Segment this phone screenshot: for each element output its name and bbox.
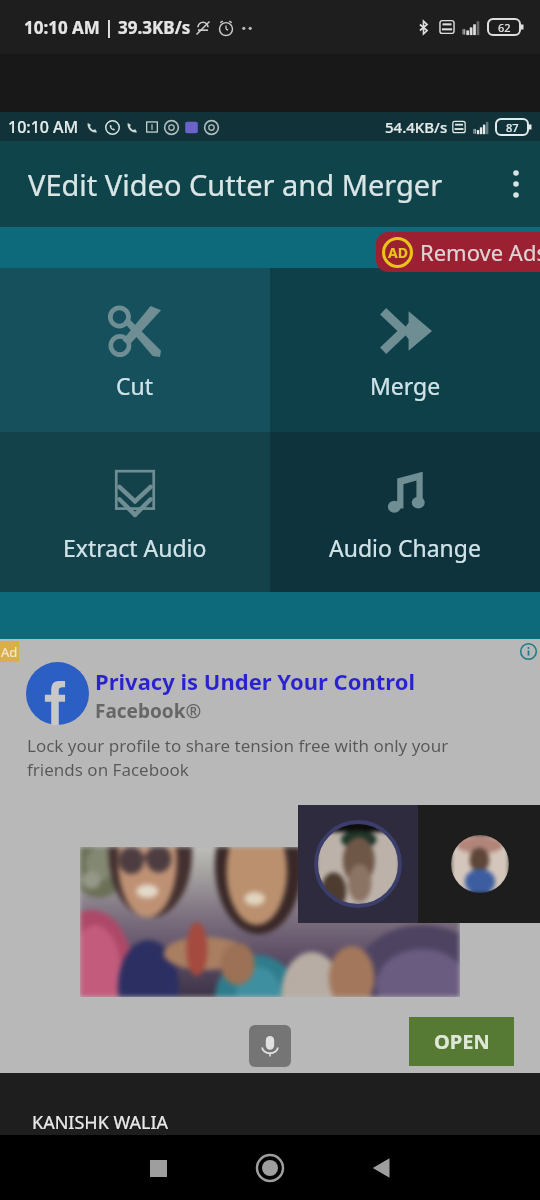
staticText: 10:10 AM | 39.3KB/s xyxy=(24,16,191,39)
button[interactable]: Merge xyxy=(270,268,540,432)
staticText: 54.4KB/s xyxy=(385,117,448,137)
staticText: OPEN xyxy=(434,1028,490,1055)
button[interactable]: More options xyxy=(492,160,540,208)
staticText: Cut xyxy=(116,370,154,401)
staticText: 87 xyxy=(506,120,519,135)
staticText: VEdit Video Cutter and Merger xyxy=(28,165,443,204)
button[interactable]: Ad info xyxy=(518,641,538,661)
staticText: Privacy is Under Your Control xyxy=(95,666,416,696)
staticText: Ad xyxy=(1,643,18,661)
staticText: Merge xyxy=(370,370,441,401)
button[interactable]: Home xyxy=(242,1140,298,1196)
button[interactable]: AD xyxy=(376,232,540,272)
staticText: Facebook® xyxy=(95,698,202,724)
button[interactable]: OPEN xyxy=(409,1017,514,1066)
button[interactable]: Back xyxy=(354,1140,410,1196)
button[interactable]: Extract Audio xyxy=(0,432,270,592)
staticText: Audio Change xyxy=(329,532,481,563)
staticText: Extract Audio xyxy=(63,532,207,563)
staticText: AD xyxy=(388,243,408,262)
staticText: 62 xyxy=(498,20,511,35)
staticText: Remove Ads xyxy=(420,237,540,267)
staticText: 10:10 AM xyxy=(8,116,79,138)
button[interactable]: Cut xyxy=(0,268,270,432)
button[interactable]: Voice xyxy=(249,1025,291,1067)
button[interactable]: Recents xyxy=(130,1140,186,1196)
staticText: KANISHK WALIA xyxy=(32,1110,169,1135)
staticText: Lock your profile to share tension free … xyxy=(27,734,449,781)
button[interactable]: Audio Change xyxy=(270,432,540,592)
